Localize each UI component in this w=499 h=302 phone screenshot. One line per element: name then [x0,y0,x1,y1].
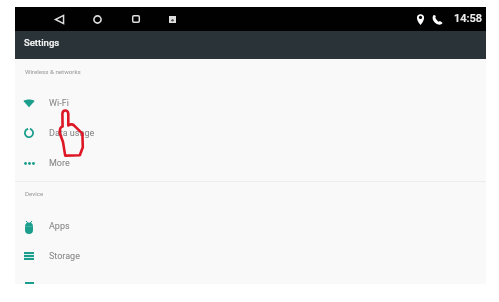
staticText: Wireless & networks [25,68,81,75]
staticText: Device [25,190,44,197]
button[interactable]: Screenshot [161,7,183,31]
button[interactable]: Data usage [15,118,486,148]
button[interactable]: Recent apps [125,7,147,31]
button[interactable]: Home [86,7,108,31]
button[interactable]: Apps [15,211,486,241]
other: Phone [432,14,443,25]
other: Annotation [0,0,499,302]
button[interactable]: Battery [15,273,486,284]
staticText: Data usage [49,128,95,139]
staticText: Apps [49,221,70,232]
button[interactable]: Back [48,7,70,31]
staticText: Wi-Fi [49,98,69,109]
staticText: Settings [24,37,60,48]
button[interactable]: Storage [15,241,486,271]
button[interactable]: Wi-Fi [15,88,486,118]
staticText: 14:58 [454,12,482,25]
staticText: Storage [49,251,80,262]
other: Location [416,14,425,25]
button[interactable]: More [15,148,486,178]
staticText: More [49,158,70,169]
